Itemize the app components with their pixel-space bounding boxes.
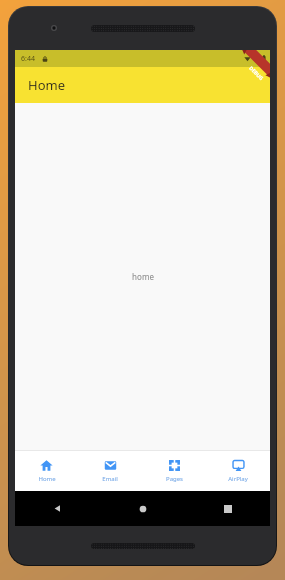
staticText: 6:44 bbox=[21, 54, 35, 64]
staticText: home bbox=[132, 271, 154, 282]
button[interactable]: Pages bbox=[142, 451, 206, 491]
staticText: Home bbox=[38, 475, 56, 483]
button[interactable]: Email bbox=[78, 451, 142, 491]
staticText: DEBUG bbox=[247, 65, 265, 82]
button[interactable]: Recent apps bbox=[185, 491, 270, 526]
staticText: AirPlay bbox=[228, 475, 248, 483]
staticText: Email bbox=[102, 475, 118, 483]
button[interactable]: AirPlay bbox=[206, 451, 270, 491]
button[interactable]: Back bbox=[15, 491, 100, 526]
button[interactable]: Home bbox=[100, 491, 185, 526]
staticText: Pages bbox=[166, 475, 183, 483]
staticText: Home bbox=[28, 76, 65, 94]
button[interactable]: Home bbox=[15, 451, 78, 491]
